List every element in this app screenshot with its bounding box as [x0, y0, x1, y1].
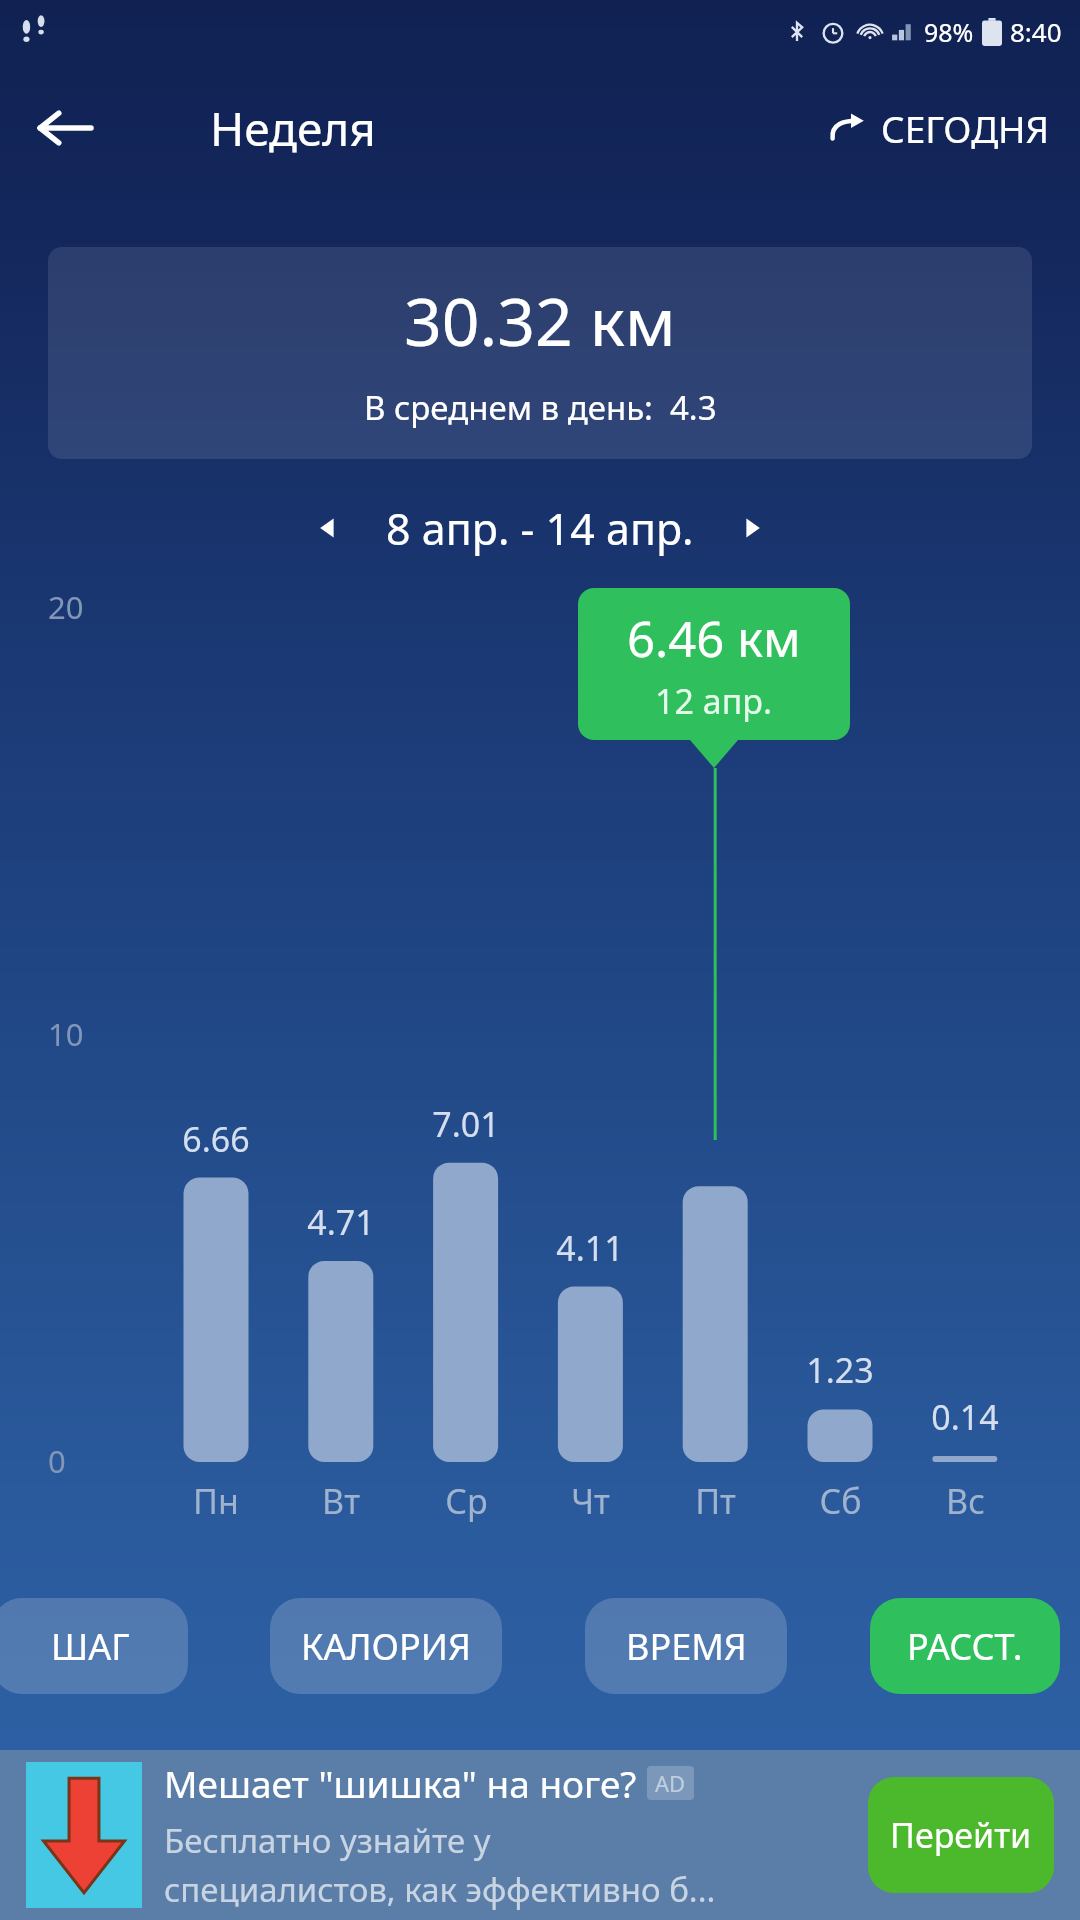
- staticText: В среднем в день: 4.3: [364, 385, 717, 430]
- staticText: 20: [48, 586, 84, 628]
- staticText: 4.71: [307, 1199, 375, 1245]
- staticText: 12 апр.: [655, 678, 773, 724]
- staticText: 10: [48, 1013, 84, 1055]
- staticText: ШАГ: [51, 1622, 130, 1671]
- staticText: Перейти: [890, 1812, 1032, 1858]
- staticText: 0.14: [931, 1394, 999, 1440]
- button[interactable]: Back: [34, 97, 96, 159]
- staticText: 0: [48, 1440, 66, 1482]
- staticText: 6.46 км: [627, 605, 801, 672]
- button[interactable]: Share: [821, 97, 1056, 159]
- staticText: КАЛОРИЯ: [301, 1622, 471, 1671]
- button[interactable]: 30.32 км: [48, 247, 1032, 459]
- staticText: 4.11: [556, 1225, 624, 1271]
- staticText: СЕГОДНЯ: [881, 103, 1050, 153]
- button[interactable]: Перейти: [868, 1777, 1054, 1893]
- staticText: Пн: [193, 1478, 239, 1524]
- staticText: 1.23: [806, 1347, 874, 1393]
- button[interactable]: РАССТ.: [870, 1598, 1060, 1694]
- button[interactable]: ШАГ: [0, 1598, 188, 1694]
- staticText: РАССТ.: [907, 1622, 1023, 1671]
- staticText: 98%: [924, 15, 974, 49]
- staticText: 8 апр. - 14 апр.: [386, 499, 694, 558]
- button[interactable]: Мешает "шишка" на ноге?: [0, 1750, 1080, 1920]
- button[interactable]: КАЛОРИЯ: [270, 1598, 502, 1694]
- button[interactable]: Previous week: [296, 496, 360, 560]
- staticText: Вс: [946, 1478, 985, 1524]
- staticText: Ср: [445, 1478, 488, 1524]
- staticText: специалистов, как эффективно б...: [164, 1867, 716, 1912]
- staticText: 30.32 км: [404, 275, 676, 365]
- staticText: Бесплатно узнайте у: [164, 1818, 491, 1863]
- button[interactable]: Next week: [720, 496, 784, 560]
- other: Share: [827, 108, 867, 148]
- button[interactable]: ВРЕМЯ: [585, 1598, 787, 1694]
- staticText: 7.01: [432, 1101, 500, 1147]
- staticText: 8:40: [1010, 14, 1062, 49]
- button[interactable]: 6.46 км: [578, 588, 850, 740]
- staticText: Вт: [322, 1478, 360, 1524]
- staticText: Чт: [571, 1478, 610, 1524]
- staticText: ВРЕМЯ: [626, 1622, 747, 1671]
- staticText: Неделя: [210, 97, 376, 160]
- staticText: AD: [655, 1768, 686, 1798]
- staticText: Мешает "шишка" на ноге?: [164, 1758, 637, 1808]
- staticText: 6.66: [182, 1116, 250, 1162]
- staticText: Сб: [819, 1478, 862, 1524]
- staticText: Пт: [695, 1478, 736, 1524]
